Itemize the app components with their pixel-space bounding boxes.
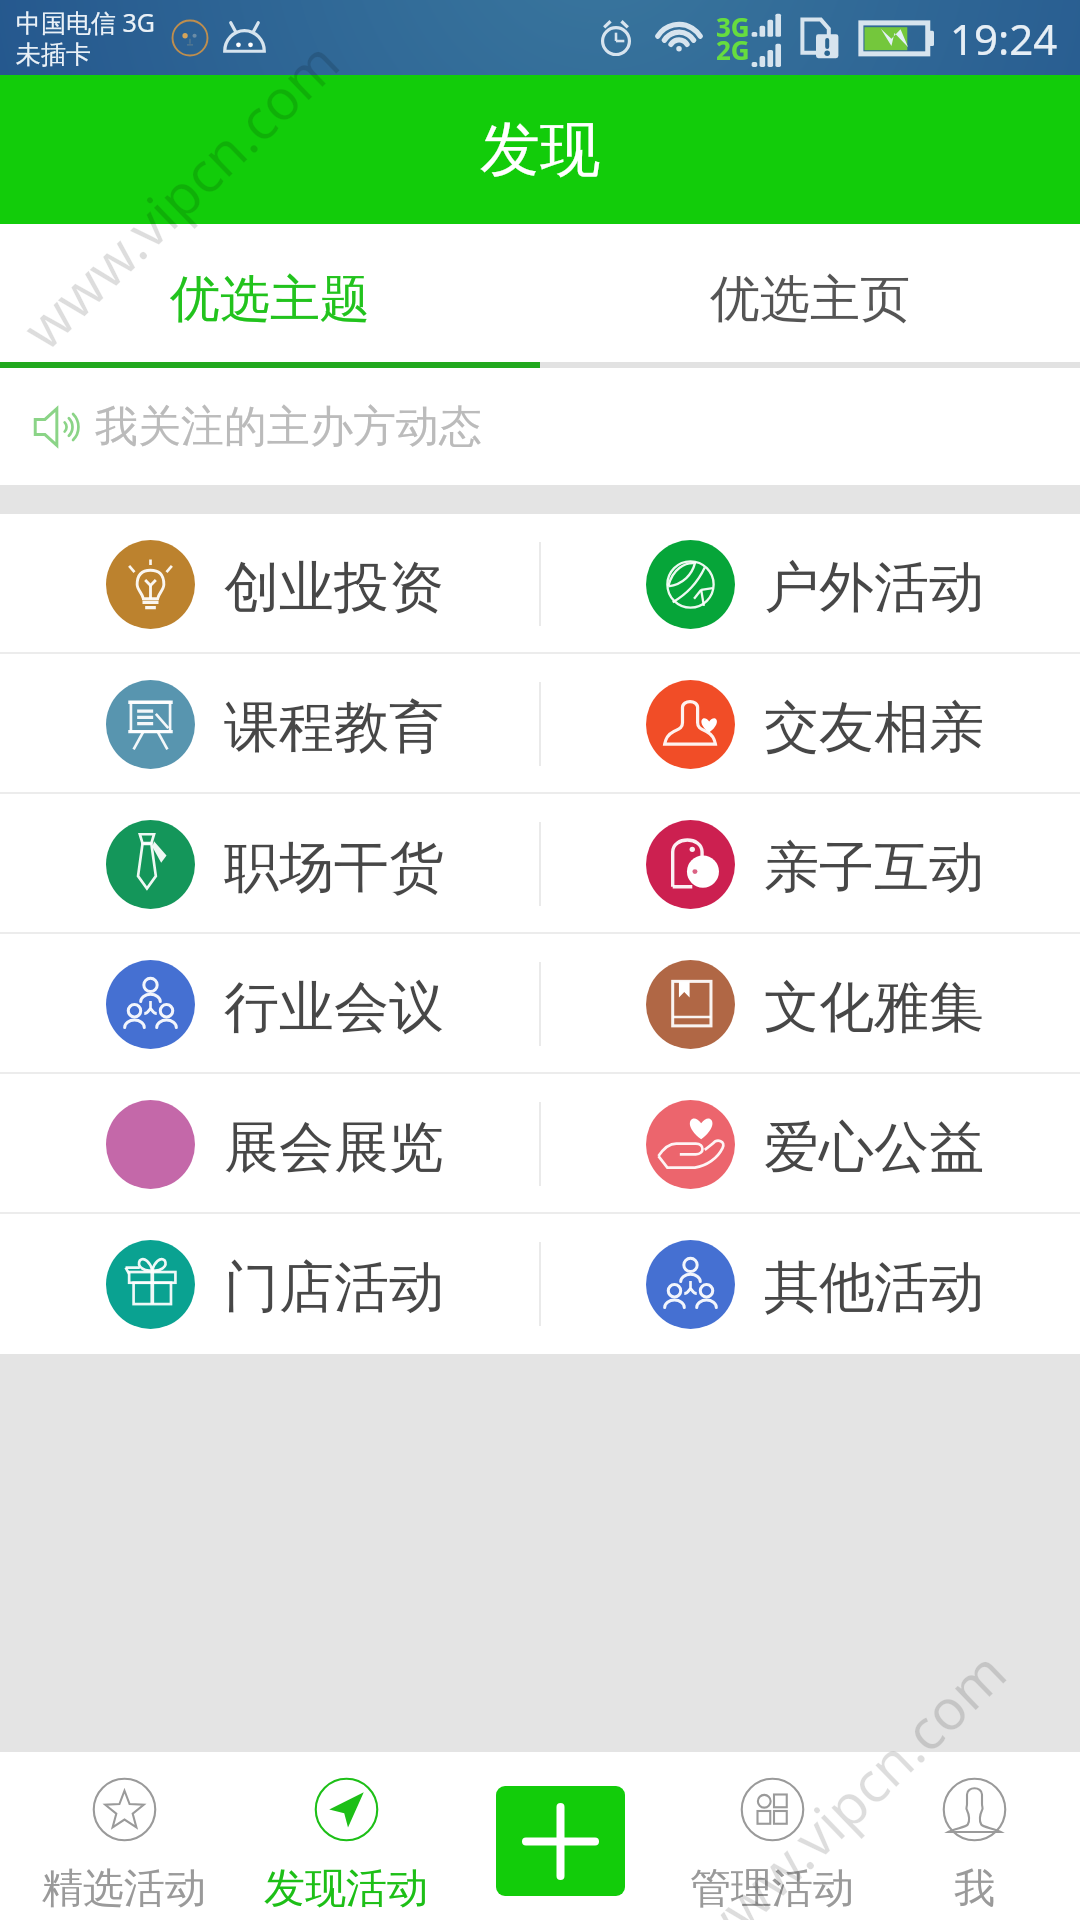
staticText: 优选主页 [710,268,910,331]
button[interactable]: Add [444,1752,676,1920]
staticText: 中国电信 3G [16,5,156,39]
staticText: 优选主题 [170,268,370,331]
staticText: 亲子互动 [764,833,984,902]
button[interactable]: 职场干货 [0,794,540,934]
staticText: 行业会议 [224,973,444,1042]
button[interactable]: 优选主页 [540,224,1080,362]
button[interactable]: 发现活动 [248,1752,444,1920]
button[interactable]: 我 [868,1752,1080,1920]
button[interactable]: 我关注的主办方动态 [32,368,1080,485]
button[interactable]: 课程教育 [0,654,540,794]
staticText: 2G [716,32,750,67]
staticText: www.vipcn.com [5,24,354,365]
button[interactable]: 优选主题 [0,224,540,362]
button[interactable]: 创业投资 [0,514,540,654]
button[interactable]: 交友相亲 [540,654,1080,794]
button[interactable]: 文化雅集 [540,934,1080,1074]
button[interactable]: 亲子互动 [540,794,1080,934]
staticText: 创业投资 [224,553,444,622]
staticText: 19:24 [950,10,1058,67]
staticText: www.vipcn.com [672,1634,1021,1920]
button[interactable]: 展会展览 [0,1074,540,1214]
button[interactable]: 精选活动 [0,1752,248,1920]
button[interactable]: 行业会议 [0,934,540,1074]
staticText: 精选活动 [42,1863,206,1915]
staticText: 3G [716,9,750,44]
staticText: 门店活动 [224,1253,444,1322]
staticText: 课程教育 [224,693,444,762]
staticText: 发现活动 [264,1863,428,1915]
button[interactable]: 其他活动 [540,1214,1080,1354]
staticText: 户外活动 [764,553,984,622]
staticText: 发现 [480,112,600,188]
staticText: 爱心公益 [764,1113,984,1182]
staticText: 文化雅集 [764,973,984,1042]
button[interactable]: 户外活动 [540,514,1080,654]
button[interactable]: 门店活动 [0,1214,540,1354]
staticText: 我 [954,1863,995,1915]
staticText: 交友相亲 [764,693,984,762]
staticText: 其他活动 [764,1253,984,1322]
staticText: 未插卡 [16,39,91,70]
staticText: 展会展览 [224,1113,444,1182]
button[interactable]: 爱心公益 [540,1074,1080,1214]
button[interactable]: 管理活动 [676,1752,868,1920]
staticText: 我关注的主办方动态 [95,400,482,454]
staticText: 管理活动 [690,1863,854,1915]
staticText: 职场干货 [224,833,444,902]
